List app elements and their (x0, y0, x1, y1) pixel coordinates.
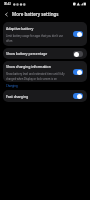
button[interactable]: Show charging information (3, 61, 87, 82)
button[interactable]: Adaptive battery (3, 22, 87, 46)
button[interactable]: Fast charging (73, 93, 83, 99)
staticText: More battery settings (12, 11, 59, 17)
button[interactable]: Fast charging (3, 90, 87, 102)
staticText: Show charging information (6, 64, 51, 69)
staticText: Fast charging (6, 94, 29, 99)
staticText: Adaptive battery (6, 26, 34, 31)
staticText: 00:43 (4, 2, 11, 6)
button[interactable]: Show battery percentage (73, 51, 83, 57)
button[interactable]: Show battery percentage (3, 48, 87, 59)
button[interactable]: Adaptive battery (73, 31, 83, 37)
button[interactable]: Show charging information (73, 69, 83, 75)
staticText: Show battery level and estimated time un… (6, 72, 65, 80)
staticText: Charging (6, 84, 18, 88)
staticText: Show battery percentage (6, 51, 48, 56)
staticText: Limit battery usage for apps that you do… (6, 34, 65, 42)
button[interactable]: Back (2, 10, 11, 19)
